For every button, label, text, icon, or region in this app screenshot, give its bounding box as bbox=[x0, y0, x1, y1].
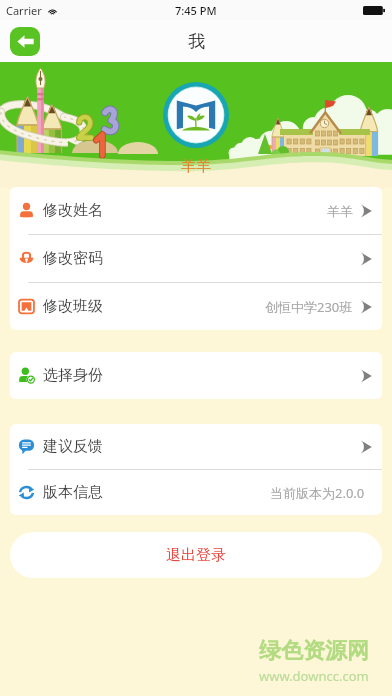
button[interactable]: 修改姓名 bbox=[10, 187, 382, 234]
button[interactable]: 选择身份 bbox=[10, 352, 382, 399]
staticText: 绿色资源网 bbox=[259, 637, 369, 665]
staticText: 修改班级 bbox=[43, 297, 103, 316]
button[interactable]: Back bbox=[10, 27, 40, 56]
staticText: Carrier bbox=[6, 3, 42, 18]
staticText: 修改密码 bbox=[43, 249, 103, 268]
staticText: 7:45 PM bbox=[175, 3, 217, 18]
staticText: 建议反馈 bbox=[43, 437, 103, 456]
staticText: www.downcc.com bbox=[259, 667, 369, 685]
button[interactable]: 版本信息 bbox=[10, 470, 382, 515]
button[interactable]: 建议反馈 bbox=[10, 424, 382, 469]
staticText: 羊羊 bbox=[327, 203, 353, 219]
button[interactable]: 修改班级 bbox=[10, 283, 382, 330]
staticText: 羊羊 bbox=[181, 157, 211, 176]
staticText: 退出登录 bbox=[166, 546, 226, 565]
button[interactable]: 退出登录 bbox=[10, 532, 382, 578]
staticText: 当前版本为2.0.0 bbox=[270, 484, 365, 502]
staticText: 创恒中学230班 bbox=[265, 298, 353, 316]
staticText: 选择身份 bbox=[43, 366, 103, 385]
staticText: 我 bbox=[188, 31, 205, 52]
staticText: 修改姓名 bbox=[43, 201, 103, 220]
button[interactable]: 修改密码 bbox=[10, 235, 382, 282]
staticText: 版本信息 bbox=[43, 483, 103, 502]
